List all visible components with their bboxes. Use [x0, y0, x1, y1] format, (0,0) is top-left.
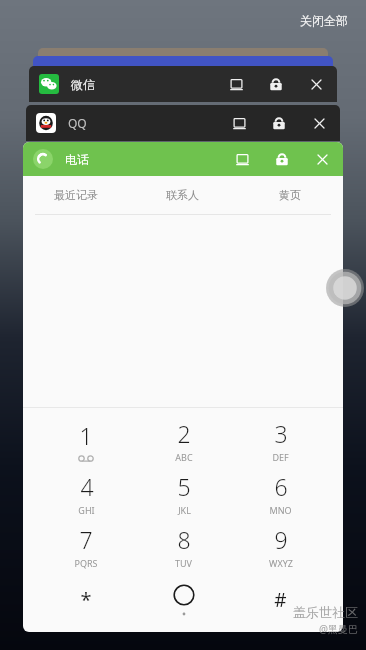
staticText: 最近记录	[54, 188, 98, 202]
staticText: ABC	[175, 451, 193, 463]
button[interactable]: Split screen	[225, 142, 259, 176]
staticText: JKL	[178, 504, 191, 516]
button[interactable]: 8	[135, 520, 232, 573]
staticText: WXYZ	[269, 557, 293, 569]
button[interactable]: Close	[305, 142, 339, 176]
button[interactable]: Lock app	[265, 142, 299, 176]
button[interactable]: 2	[135, 414, 232, 467]
button[interactable]: Lock app	[259, 67, 293, 101]
button[interactable]: 电话	[23, 142, 343, 176]
button[interactable]: 微信	[29, 66, 337, 102]
button[interactable]: QQ	[26, 105, 340, 141]
button[interactable]: 联系人	[129, 176, 236, 214]
staticText: 6	[274, 471, 288, 502]
staticText: 3	[274, 418, 288, 449]
button[interactable]: 5	[135, 467, 232, 520]
button[interactable]: Close	[299, 67, 333, 101]
staticText: #	[274, 587, 287, 613]
button[interactable]: 黄页	[236, 176, 343, 214]
staticText: PQRS	[74, 557, 98, 569]
button[interactable]: 7	[37, 520, 135, 573]
button[interactable]: Lock app	[262, 106, 296, 140]
staticText: TUV	[175, 557, 192, 569]
button[interactable]: Assistive touch	[326, 269, 364, 307]
staticText: 2	[177, 418, 191, 449]
staticText: 电话	[65, 152, 89, 167]
staticText: 5	[177, 471, 191, 502]
staticText: *	[80, 586, 92, 613]
staticText: QQ	[68, 115, 87, 131]
staticText: MNO	[269, 504, 292, 516]
button[interactable]: 1	[37, 414, 135, 467]
button[interactable]: #	[232, 573, 329, 626]
button[interactable]	[135, 573, 232, 626]
button[interactable]: Split screen	[219, 67, 253, 101]
staticText: 联系人	[166, 188, 199, 202]
button[interactable]: 关闭全部	[296, 10, 352, 31]
button[interactable]	[33, 56, 333, 70]
staticText: DEF	[272, 451, 289, 463]
button[interactable]: 9	[232, 520, 329, 573]
button[interactable]: 最近记录	[23, 176, 129, 214]
button[interactable]	[38, 48, 328, 62]
button[interactable]: 6	[232, 467, 329, 520]
staticText: 7	[79, 524, 93, 555]
staticText: GHI	[78, 504, 95, 516]
staticText: 微信	[71, 77, 95, 92]
staticText: 4	[80, 471, 94, 502]
button[interactable]: *	[37, 573, 135, 626]
staticText: 关闭全部	[300, 13, 348, 28]
staticText: @黑曼巴	[319, 622, 358, 636]
button[interactable]: 4	[37, 467, 135, 520]
staticText: 1	[79, 420, 93, 451]
staticText: 8	[177, 524, 191, 555]
button[interactable]: Close	[302, 106, 336, 140]
staticText: 盖乐世社区	[293, 604, 358, 620]
button[interactable]: Split screen	[222, 106, 256, 140]
button[interactable]: 3	[232, 414, 329, 467]
staticText: 黄页	[279, 188, 301, 202]
staticText: 9	[274, 524, 288, 555]
